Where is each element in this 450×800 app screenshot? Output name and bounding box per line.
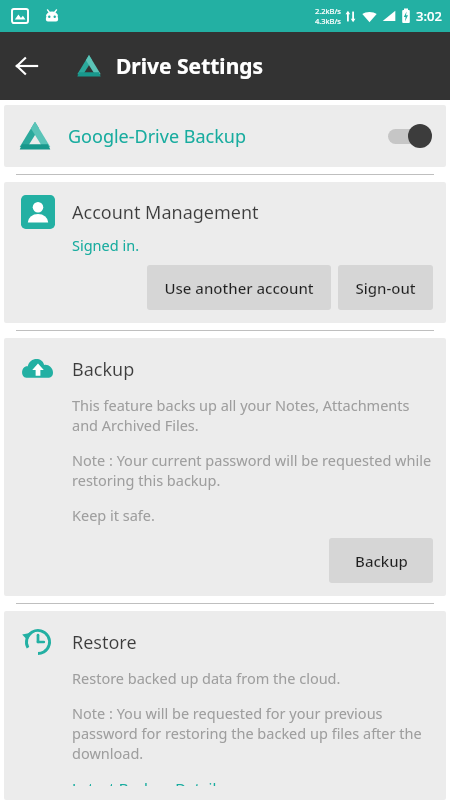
staticText: Note : Your current password will be req… xyxy=(72,450,432,490)
staticText: Sign-out xyxy=(355,278,416,298)
staticText: Restore backed up data from the cloud. xyxy=(72,668,341,688)
staticText: Restore xyxy=(72,630,137,655)
button[interactable]: Back xyxy=(0,39,54,93)
staticText: Google-Drive Backup xyxy=(68,124,246,149)
staticText: Drive Settings xyxy=(116,52,264,81)
staticText: Signed in. xyxy=(72,235,140,255)
button[interactable]: Use another account xyxy=(147,265,331,310)
staticText: This feature backs up all your Notes, At… xyxy=(72,395,432,435)
button[interactable]: Backup xyxy=(329,538,433,583)
staticText: Use another account xyxy=(164,278,314,298)
staticText: Backup xyxy=(72,357,135,382)
staticText: 2.2kB/s xyxy=(315,6,341,16)
button[interactable]: Sign-out xyxy=(338,265,433,310)
staticText: Note : You will be requested for your pr… xyxy=(72,703,432,763)
button[interactable]: Google-Drive Backup xyxy=(4,105,446,167)
staticText: Backup xyxy=(355,551,408,571)
staticText: Account Management xyxy=(72,200,259,225)
staticText: 4.3kB/s xyxy=(315,16,341,26)
staticText: Keep it safe. xyxy=(72,505,155,525)
staticText: 3:02 xyxy=(416,7,442,25)
button[interactable]: Toggle Google Drive backup xyxy=(386,123,432,149)
button[interactable]: Latest Backup-Details. xyxy=(72,778,228,786)
